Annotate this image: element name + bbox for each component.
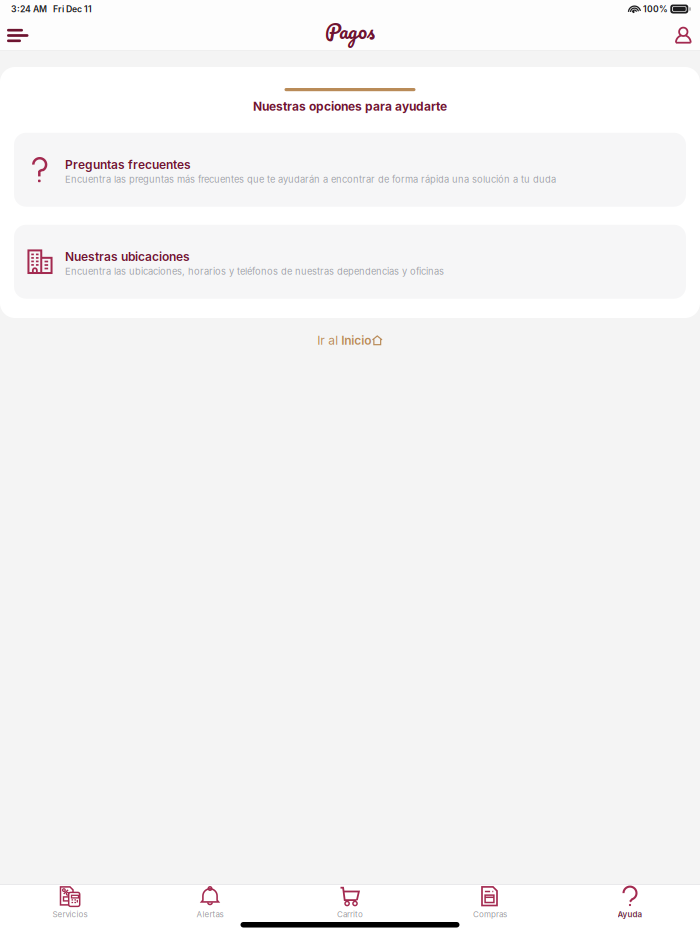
staticText: Inicio bbox=[341, 333, 371, 347]
button[interactable]: Alertas bbox=[140, 885, 280, 920]
button[interactable]: Menu bbox=[0, 18, 36, 48]
staticText: Ir al bbox=[317, 333, 341, 347]
staticText: Preguntas frecuentes bbox=[65, 157, 191, 172]
button[interactable]: Carrito bbox=[280, 885, 420, 920]
button[interactable]: Ir al bbox=[309, 318, 391, 355]
staticText: Carrito bbox=[337, 909, 363, 919]
staticText: Nuestras opciones para ayudarte bbox=[253, 99, 447, 114]
staticText: Pagos bbox=[325, 13, 375, 48]
button[interactable]: Preguntas frecuentes bbox=[0, 133, 700, 207]
button[interactable]: Account bbox=[668, 18, 699, 49]
staticText: 3:24 AM bbox=[11, 4, 47, 14]
staticText: Servicios bbox=[52, 909, 87, 919]
staticText: Compras bbox=[473, 909, 507, 919]
button[interactable]: Servicios bbox=[0, 885, 140, 920]
staticText: Alertas bbox=[196, 909, 223, 919]
staticText: Encuentra las ubicaciones, horarios y te… bbox=[65, 266, 444, 277]
button[interactable]: Nuestras ubicaciones bbox=[0, 225, 700, 299]
staticText: 100% bbox=[643, 4, 668, 14]
button[interactable]: Ayuda bbox=[560, 885, 700, 920]
button[interactable]: Compras bbox=[420, 885, 560, 920]
staticText: Encuentra las preguntas más frecuentes q… bbox=[65, 174, 556, 185]
staticText: Ayuda bbox=[617, 909, 642, 919]
staticText: Fri Dec 11 bbox=[53, 4, 92, 14]
staticText: Nuestras ubicaciones bbox=[65, 249, 190, 264]
